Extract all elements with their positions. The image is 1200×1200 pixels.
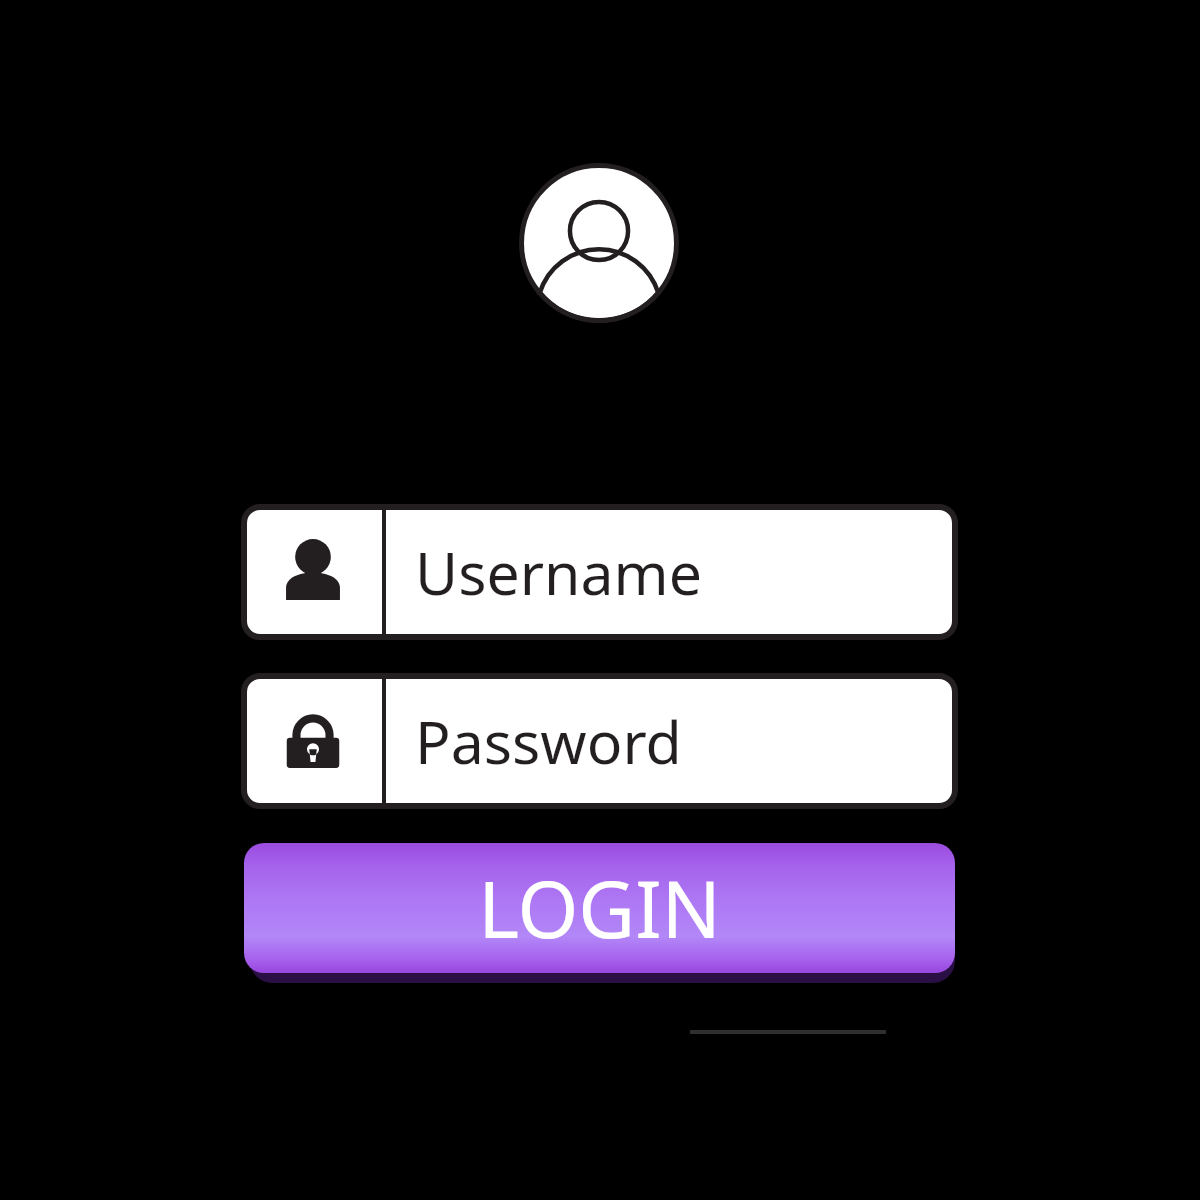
button[interactable]: LOGIN — [244, 843, 955, 973]
button[interactable]: Username — [244, 507, 955, 637]
staticText: Username — [415, 532, 703, 612]
other: Profile avatar — [519, 163, 679, 323]
button[interactable]: Password — [244, 676, 955, 806]
staticText: Password — [415, 701, 682, 781]
staticText: LOGIN — [478, 855, 721, 961]
